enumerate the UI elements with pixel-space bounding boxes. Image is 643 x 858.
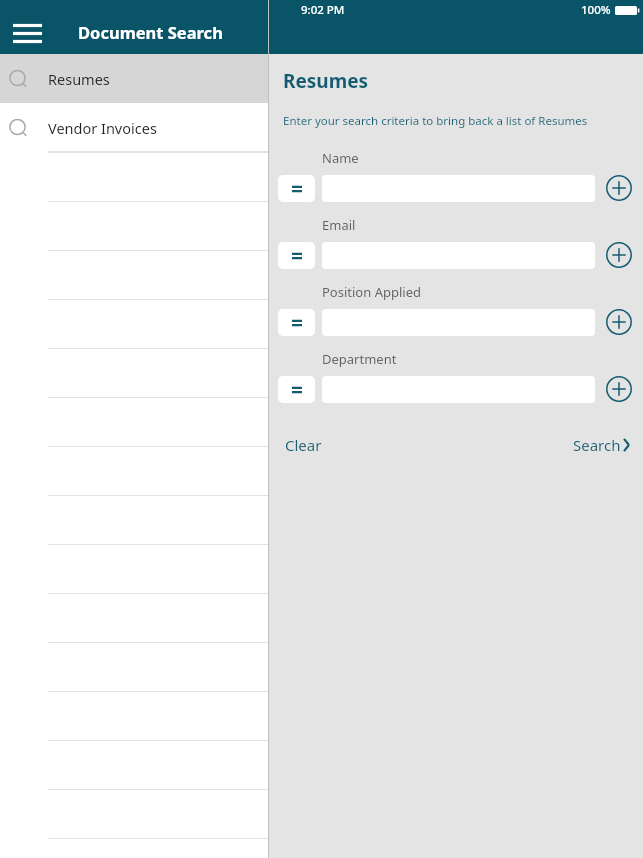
button[interactable]: Vendor Invoices [0,103,268,152]
staticText: Name [322,149,359,167]
button[interactable]: Change operator for Department [278,376,315,403]
button[interactable]: Add another Position Applied criterion [604,307,634,337]
staticText: Resumes [283,68,369,94]
staticText: 9:02 PM [301,2,345,18]
staticText: Resumes [48,69,110,89]
button[interactable]: Search [571,431,637,459]
staticText: Clear [285,435,322,455]
button[interactable]: Change operator for Email [278,242,315,269]
staticText: 100% [581,2,611,18]
button[interactable]: Open navigation menu [8,14,48,54]
staticText: Document Search [78,21,223,43]
button[interactable]: Clear [283,431,324,459]
staticText: Search [573,435,621,455]
button[interactable]: Add another Name criterion [604,173,634,203]
staticText: Email [322,216,356,234]
button[interactable]: Add another Department criterion [604,374,634,404]
staticText: Position Applied [322,283,421,301]
staticText: Vendor Invoices [48,118,157,138]
button[interactable]: Change operator for Name [278,175,315,202]
button[interactable]: Change operator for Position Applied [278,309,315,336]
button[interactable]: Add another Email criterion [604,240,634,270]
staticText: Department [322,350,397,368]
button[interactable]: Resumes [0,54,268,103]
staticText: Enter your search criteria to bring back… [283,113,588,129]
